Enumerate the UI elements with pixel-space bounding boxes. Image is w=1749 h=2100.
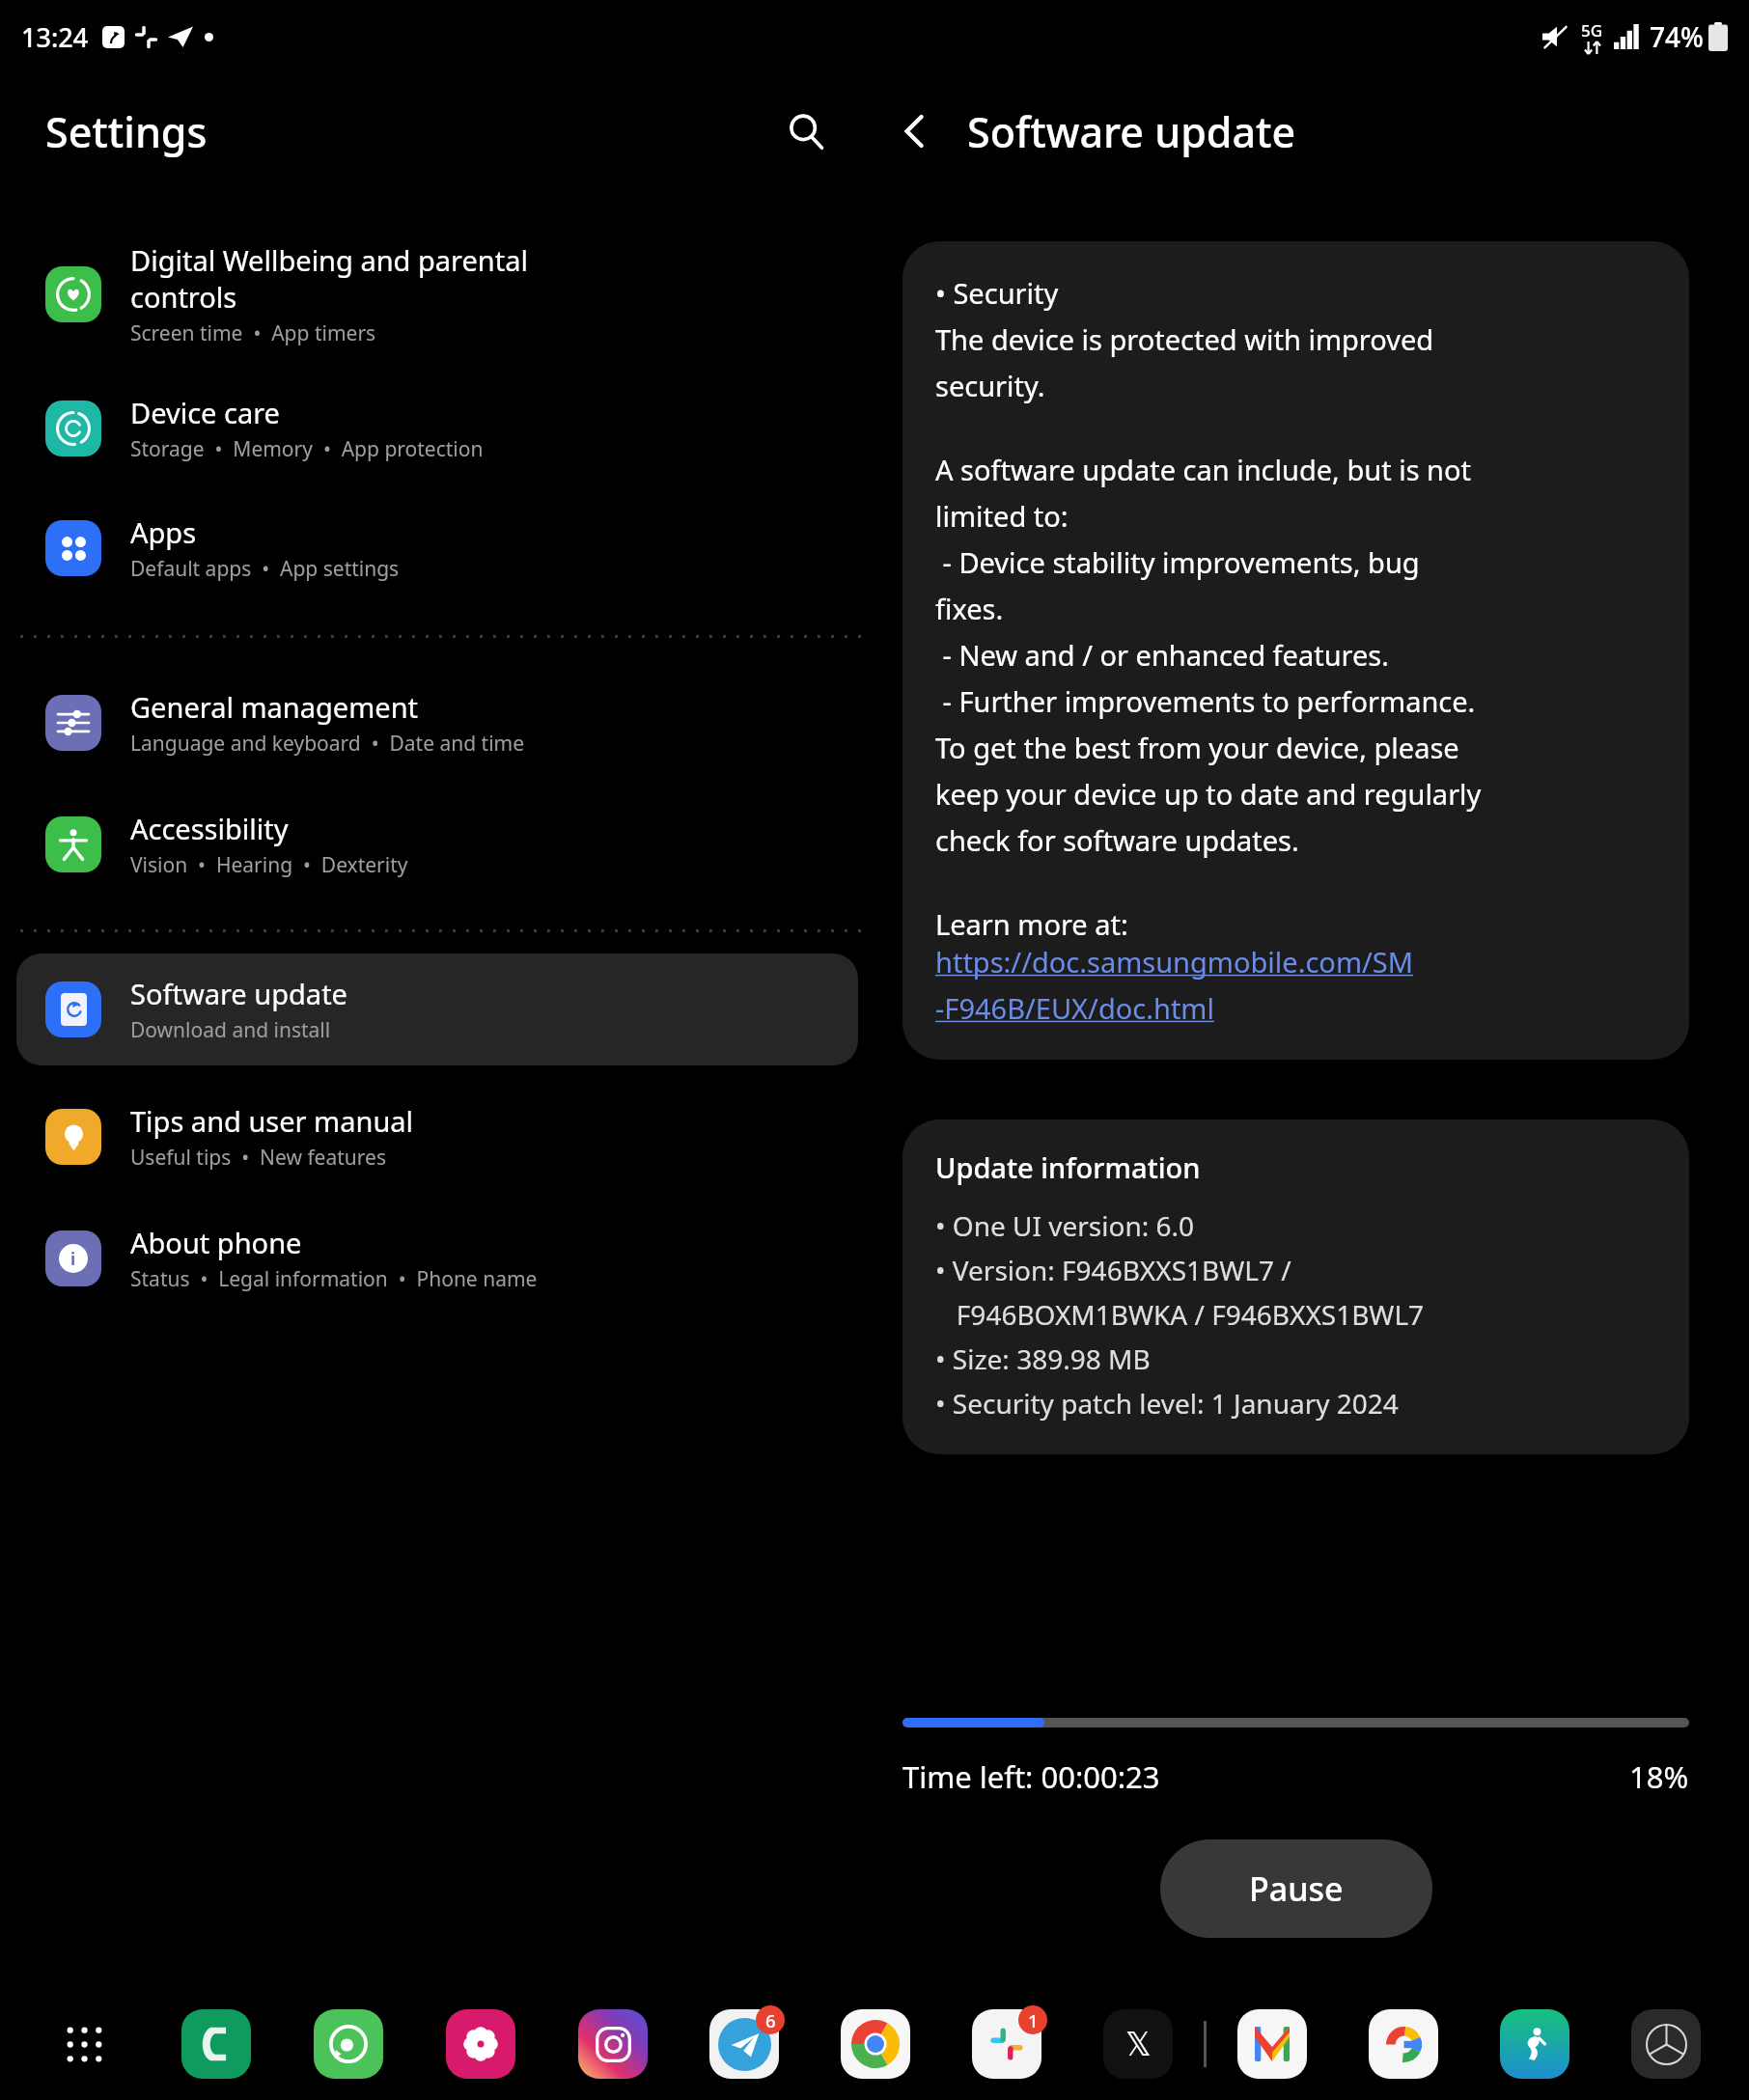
staticText: Default apps • App settings — [130, 555, 400, 583]
button[interactable]: Accessibility — [0, 794, 874, 895]
button[interactable]: Mercedes me — [1600, 2002, 1732, 2086]
staticText: 13:24 — [21, 19, 89, 55]
staticText: Time left: 00:00:23 — [902, 1756, 1160, 1797]
button[interactable]: Google — [1338, 2002, 1469, 2086]
staticText: 𝕏 — [1125, 2026, 1152, 2063]
button[interactable]: Samsung Health — [1469, 2002, 1600, 2086]
staticText: Software update — [130, 975, 347, 1012]
button[interactable]: Apps — [0, 498, 874, 598]
staticText: Digital Wellbeing and parental controls — [130, 241, 528, 316]
staticText: 5G — [1581, 19, 1603, 41]
staticText: Pause — [1249, 1866, 1344, 1911]
staticText: Storage • Memory • App protection — [130, 435, 484, 463]
button[interactable]: https://doc.samsungmobile.com/SM -F946B/… — [935, 943, 1414, 1027]
staticText: About phone — [130, 1224, 302, 1261]
staticText: Screen time • App timers — [130, 319, 376, 347]
staticText: Learn more at: — [935, 905, 1128, 943]
button[interactable]: Chrome — [810, 2002, 941, 2086]
button[interactable]: Digital Wellbeing and parental controls — [0, 226, 874, 363]
staticText: Software update — [967, 103, 1296, 160]
staticText: Update information — [935, 1148, 1201, 1186]
button[interactable]: Apps — [17, 2002, 150, 2086]
button[interactable]: Gallery — [414, 2002, 546, 2086]
button[interactable]: Search — [776, 101, 836, 161]
staticText: Apps — [130, 513, 197, 551]
staticText: Tips and user manual — [130, 1102, 414, 1140]
button[interactable]: Gmail — [1207, 2002, 1338, 2086]
button[interactable]: Back — [884, 100, 946, 162]
button[interactable]: i — [0, 1208, 874, 1309]
staticText: 1 — [1028, 2008, 1039, 2032]
staticText: Status • Legal information • Phone name — [130, 1265, 538, 1293]
staticText: Language and keyboard • Date and time — [130, 730, 525, 758]
staticText: https://doc.samsungmobile.com/SM -F946B/… — [935, 943, 1414, 1027]
staticText: 18% — [1629, 1756, 1689, 1797]
button[interactable]: Device care — [0, 378, 874, 479]
button[interactable]: Telegram — [679, 2002, 810, 2086]
staticText: A software update can include, but is no… — [935, 451, 1482, 859]
button[interactable]: Pause — [1160, 1839, 1432, 1938]
staticText: Device care — [130, 394, 280, 431]
button[interactable]: General management — [0, 673, 874, 773]
button[interactable]: Phone — [150, 2002, 282, 2086]
button[interactable]: Slack — [941, 2002, 1072, 2086]
staticText: i — [70, 1247, 76, 1270]
staticText: Accessibility — [130, 810, 289, 847]
staticText: • One UI version: 6.0 • Version: F946BXX… — [935, 1207, 1425, 1422]
button[interactable]: Software update — [16, 953, 858, 1065]
staticText: 74% — [1650, 18, 1704, 55]
staticText: Vision • Hearing • Dexterity — [130, 851, 408, 879]
button[interactable]: Instagram — [546, 2002, 679, 2086]
staticText: Download and install — [130, 1016, 331, 1044]
button[interactable]: Tips and user manual — [0, 1087, 874, 1187]
staticText: • Security The device is protected with … — [935, 274, 1434, 404]
staticText: General management — [130, 688, 419, 726]
staticText: Settings — [45, 103, 208, 160]
button[interactable]: X — [1072, 2002, 1204, 2086]
button[interactable]: WhatsApp — [282, 2002, 414, 2086]
staticText: Useful tips • New features — [130, 1144, 386, 1172]
staticText: 6 — [765, 2008, 776, 2032]
